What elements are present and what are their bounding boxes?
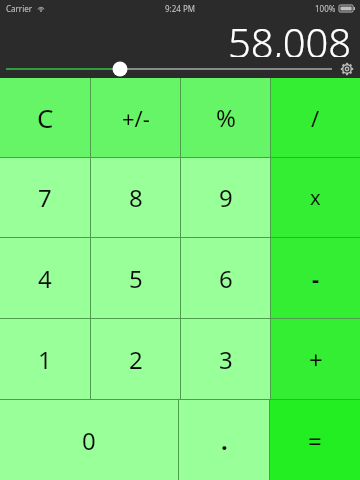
- staticText: 6: [219, 262, 233, 295]
- button[interactable]: =: [270, 400, 360, 480]
- staticText: 100%: [315, 3, 336, 14]
- staticText: 7: [38, 181, 52, 214]
- staticText: +/-: [122, 103, 150, 133]
- staticText: +: [309, 343, 323, 376]
- staticText: 9: [219, 181, 233, 214]
- staticText: 58,008: [228, 15, 352, 57]
- button[interactable]: /: [271, 78, 360, 157]
- button[interactable]: 5: [91, 238, 180, 318]
- button[interactable]: +/-: [91, 78, 180, 157]
- button[interactable]: 2: [91, 319, 180, 399]
- staticText: 9:24 PM: [165, 3, 196, 14]
- button[interactable]: 4: [0, 238, 90, 318]
- button[interactable]: 7: [0, 158, 90, 237]
- staticText: Carrier: [6, 3, 33, 14]
- button[interactable]: 9: [181, 158, 270, 237]
- staticText: 5: [129, 262, 143, 295]
- staticText: -: [312, 263, 320, 293]
- staticText: =: [308, 424, 322, 457]
- staticText: 8: [129, 181, 143, 214]
- button[interactable]: 0: [0, 400, 178, 480]
- staticText: C: [37, 100, 54, 135]
- button[interactable]: -: [271, 238, 360, 318]
- button[interactable]: %: [181, 78, 270, 157]
- staticText: .: [221, 424, 228, 457]
- button[interactable]: 6: [181, 238, 270, 318]
- staticText: 4: [38, 262, 52, 295]
- button[interactable]: Adjust value: [0, 58, 360, 78]
- button[interactable]: 3: [181, 319, 270, 399]
- button[interactable]: 8: [91, 158, 180, 237]
- button[interactable]: +: [271, 319, 360, 399]
- button[interactable]: .: [179, 400, 269, 480]
- staticText: /: [311, 103, 320, 133]
- button[interactable]: C: [0, 78, 90, 157]
- staticText: 2: [129, 343, 143, 376]
- button[interactable]: 1: [0, 319, 90, 399]
- staticText: 3: [219, 343, 233, 376]
- button[interactable]: x: [271, 158, 360, 237]
- staticText: 0: [82, 424, 96, 457]
- staticText: %: [216, 101, 236, 134]
- staticText: x: [310, 184, 321, 211]
- staticText: 1: [38, 343, 52, 376]
